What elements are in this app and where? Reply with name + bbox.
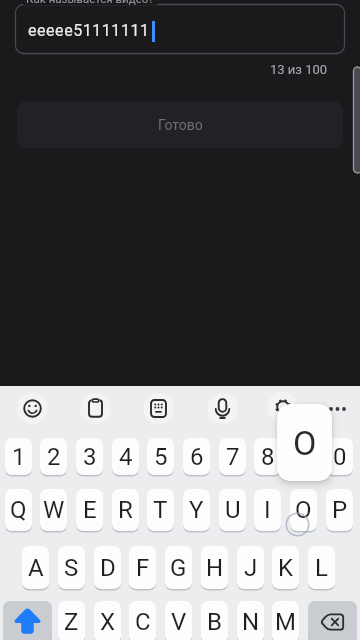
staticText: 5 xyxy=(154,443,168,471)
button[interactable]: 1 xyxy=(5,438,32,475)
button[interactable] xyxy=(207,393,238,424)
button[interactable]: O xyxy=(290,489,317,531)
button[interactable]: S xyxy=(58,546,85,589)
button[interactable]: 4 xyxy=(112,438,139,475)
staticText: Q xyxy=(10,496,27,524)
button[interactable]: T xyxy=(147,489,174,531)
staticText: D xyxy=(100,554,116,582)
staticText: 8 xyxy=(261,443,275,471)
button[interactable]: J xyxy=(237,546,264,589)
button[interactable]: M xyxy=(272,601,299,640)
button[interactable]: W xyxy=(40,489,67,531)
staticText: E xyxy=(83,496,97,524)
button[interactable]: H xyxy=(201,546,228,589)
button[interactable]: 8 xyxy=(254,438,281,475)
staticText: W xyxy=(43,496,65,524)
staticText: S xyxy=(64,554,79,582)
button[interactable] xyxy=(15,4,345,54)
button[interactable] xyxy=(267,392,298,423)
staticText: 0 xyxy=(333,443,347,471)
staticText: 3 xyxy=(83,443,97,471)
staticText: C xyxy=(135,608,151,636)
button[interactable]: 5 xyxy=(147,438,174,475)
button[interactable]: I xyxy=(254,489,281,531)
button[interactable]: B xyxy=(201,601,228,640)
button[interactable] xyxy=(143,393,174,424)
button[interactable]: E xyxy=(76,489,103,531)
staticText: B xyxy=(207,608,222,636)
staticText: J xyxy=(244,554,258,582)
button[interactable] xyxy=(3,601,52,640)
staticText: 13 из 100 xyxy=(270,62,328,77)
button[interactable]: R xyxy=(112,489,139,531)
staticText: H xyxy=(206,554,224,582)
staticText: 1 xyxy=(12,443,26,471)
button[interactable]: Y xyxy=(183,489,210,531)
button[interactable]: 9 xyxy=(290,438,317,475)
staticText: M xyxy=(275,608,296,636)
button[interactable] xyxy=(308,601,357,640)
staticText: F xyxy=(136,554,150,582)
button[interactable]: 2 xyxy=(40,438,67,475)
button[interactable] xyxy=(17,393,48,424)
staticText: N xyxy=(242,608,260,636)
staticText: X xyxy=(100,608,116,636)
button[interactable] xyxy=(80,393,111,424)
staticText: L xyxy=(315,554,328,582)
staticText: G xyxy=(170,554,187,582)
staticText: R xyxy=(118,496,133,524)
staticText: 7 xyxy=(226,443,240,471)
staticText: 6 xyxy=(190,443,204,471)
button[interactable]: 7 xyxy=(219,438,246,475)
button[interactable]: Z xyxy=(58,601,85,640)
button[interactable]: F xyxy=(129,546,156,589)
button[interactable]: L xyxy=(308,546,335,589)
button[interactable]: 6 xyxy=(183,438,210,475)
staticText: T xyxy=(153,496,168,524)
staticText: Готово xyxy=(158,117,203,133)
staticText: O xyxy=(293,423,317,463)
button[interactable]: 3 xyxy=(76,438,103,475)
staticText: P xyxy=(332,496,348,524)
staticText: A xyxy=(28,554,44,582)
staticText: U xyxy=(225,496,241,524)
staticText: eeeee51111111 xyxy=(28,21,150,40)
staticText: Y xyxy=(189,496,204,524)
button[interactable]: K xyxy=(272,546,299,589)
button[interactable]: U xyxy=(219,489,246,531)
staticText: O xyxy=(295,496,312,524)
button[interactable]: Готово xyxy=(17,101,343,148)
staticText: I xyxy=(264,496,271,524)
button[interactable]: N xyxy=(237,601,264,640)
button[interactable]: C xyxy=(129,601,156,640)
button[interactable]: Q xyxy=(5,489,32,531)
button[interactable]: V xyxy=(165,601,192,640)
button[interactable]: P xyxy=(326,489,353,531)
button[interactable]: G xyxy=(165,546,192,589)
staticText: 2 xyxy=(47,443,61,471)
button[interactable]: D xyxy=(94,546,121,589)
staticText: K xyxy=(278,554,294,582)
button[interactable]: 0 xyxy=(326,438,353,475)
staticText: 9 xyxy=(297,443,311,471)
staticText: V xyxy=(171,608,187,636)
button[interactable]: X xyxy=(94,601,121,640)
staticText: 4 xyxy=(119,443,133,471)
staticText: Z xyxy=(64,608,79,636)
staticText: Как называется видео? xyxy=(26,0,154,5)
button[interactable]: A xyxy=(22,546,49,589)
